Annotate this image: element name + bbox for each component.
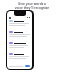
button[interactable] xyxy=(7,52,32,63)
button[interactable] xyxy=(7,41,32,52)
button[interactable] xyxy=(7,19,32,30)
button[interactable] xyxy=(7,30,32,41)
staticText: Give your words a voice they'll recogniz… xyxy=(2,2,62,10)
button[interactable]: Send xyxy=(25,65,30,67)
